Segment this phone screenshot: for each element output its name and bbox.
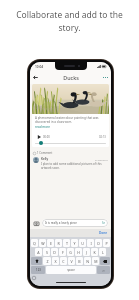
button[interactable]: V: [68, 257, 75, 265]
button[interactable]: G: [67, 248, 74, 256]
button[interactable]: W: [39, 239, 46, 247]
staticText: K: [93, 250, 96, 255]
button[interactable]: A: [35, 248, 42, 256]
staticText: T: [66, 241, 68, 246]
staticText: Y: [73, 241, 76, 246]
button[interactable]: B: [76, 257, 83, 265]
button[interactable]: I: [87, 239, 94, 247]
button[interactable]: N: [84, 257, 91, 265]
button[interactable]: Emoji: [32, 276, 36, 280]
staticText: ⏎: [102, 269, 105, 272]
button[interactable]: J: [83, 248, 90, 256]
button[interactable]: 123: [31, 266, 45, 274]
staticText: V: [70, 259, 73, 264]
staticText: It is really a lovely piece: [45, 221, 77, 225]
staticText: Done: [99, 231, 108, 235]
button[interactable]: Play: [35, 133, 42, 140]
button[interactable]: L: [99, 248, 106, 256]
staticText: O: [97, 241, 100, 246]
button[interactable]: K: [91, 248, 98, 256]
button[interactable]: X: [52, 257, 59, 265]
staticText: J: [86, 250, 87, 255]
button[interactable]: P: [103, 239, 110, 247]
staticText: 10:04: [35, 65, 44, 69]
staticText: G: [69, 250, 72, 255]
button[interactable]: Done: [99, 231, 108, 235]
button[interactable]: Y: [71, 239, 78, 247]
button[interactable]: R: [55, 239, 62, 247]
button[interactable]: Add photo: [33, 220, 40, 227]
button[interactable]: U: [79, 239, 86, 247]
staticText: A: [37, 250, 40, 255]
staticText: P: [105, 241, 108, 246]
staticText: Kelly: [41, 157, 49, 161]
staticText: N: [86, 259, 89, 264]
staticText: F: [62, 250, 64, 255]
button[interactable]: Audio position: [35, 141, 106, 145]
staticText: A phenomenal watercolour painting that w…: [35, 116, 106, 124]
staticText: C: [62, 259, 65, 264]
button[interactable]: ⏎: [97, 266, 110, 274]
staticText: read more: [35, 125, 50, 129]
staticText: Collaborate and add to the story.: [12, 9, 127, 33]
staticText: I plan to add some additional pictures o…: [41, 162, 108, 170]
staticText: L: [102, 250, 104, 255]
staticText: Se: [102, 221, 105, 225]
button[interactable]: It is really a lovely piece: [42, 219, 108, 227]
staticText: I: [90, 241, 92, 246]
button[interactable]: Shift: [31, 257, 42, 265]
button[interactable]: M: [92, 257, 99, 265]
button[interactable]: O: [95, 239, 102, 247]
button[interactable]: More options: [100, 72, 111, 83]
staticText: 02:13: [99, 135, 106, 139]
button[interactable]: read more: [35, 125, 50, 129]
button[interactable]: space: [46, 266, 96, 274]
staticText: U: [81, 241, 84, 246]
button[interactable]: H: [75, 248, 82, 256]
staticText: M: [94, 259, 98, 264]
button[interactable]: T: [63, 239, 70, 247]
staticText: Z: [46, 259, 49, 264]
staticText: B: [78, 259, 81, 264]
staticText: 1 Comment: [37, 151, 53, 155]
staticText: Ducks: [63, 74, 79, 81]
staticText: S: [46, 250, 48, 255]
staticText: 21/06/2019: [95, 158, 108, 161]
staticText: H: [77, 250, 80, 255]
button[interactable]: C: [60, 257, 67, 265]
staticText: W: [41, 241, 45, 246]
button[interactable]: Back: [30, 72, 41, 83]
staticText: 00:00: [43, 135, 50, 139]
button[interactable]: Q: [31, 239, 38, 247]
staticText: space: [67, 268, 75, 272]
staticText: 123: [36, 268, 41, 272]
staticText: Q: [33, 241, 36, 246]
button[interactable]: S: [43, 248, 50, 256]
staticText: D: [53, 250, 56, 255]
staticText: R: [57, 241, 60, 246]
button[interactable]: E: [47, 239, 54, 247]
button[interactable]: Backspace: [100, 257, 110, 265]
staticText: E: [50, 241, 52, 246]
button[interactable]: F: [59, 248, 66, 256]
button[interactable]: Z: [43, 257, 51, 265]
button[interactable]: D: [51, 248, 58, 256]
staticText: X: [54, 259, 57, 264]
